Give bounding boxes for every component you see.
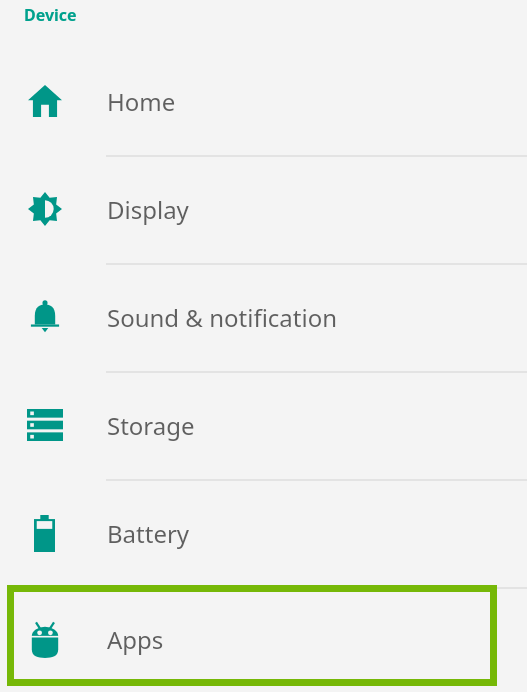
staticText: Device — [24, 4, 77, 26]
staticText: Home — [107, 85, 176, 118]
button[interactable]: Display — [0, 155, 527, 263]
staticText: Display — [107, 193, 189, 226]
button[interactable]: Storage — [0, 371, 527, 479]
staticText: Sound & notification — [107, 301, 338, 334]
button[interactable]: Sound & notification — [0, 263, 527, 371]
staticText: Storage — [107, 409, 195, 442]
staticText: Battery — [107, 517, 190, 550]
button[interactable]: Apps — [0, 587, 527, 692]
staticText: Apps — [107, 623, 164, 656]
button[interactable]: Home — [0, 47, 527, 155]
button[interactable]: Battery — [0, 479, 527, 587]
